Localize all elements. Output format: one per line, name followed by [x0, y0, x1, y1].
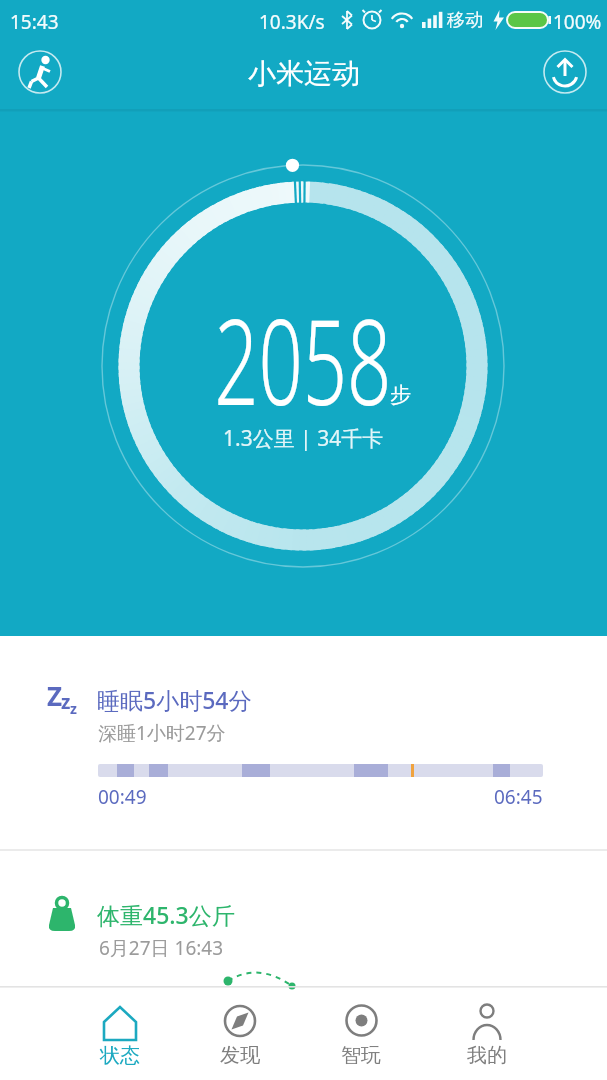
- button[interactable]: [543, 50, 587, 94]
- staticText: 100%: [553, 9, 602, 35]
- button[interactable]: [0, 852, 607, 987]
- button[interactable]: [302, 990, 422, 1080]
- button[interactable]: [60, 990, 180, 1080]
- staticText: z: [70, 699, 77, 718]
- staticText: 10.3K/s: [259, 9, 325, 35]
- staticText: z: [61, 689, 71, 715]
- staticText: 1.3公里 | 34千卡: [223, 424, 384, 453]
- staticText: Z: [47, 678, 63, 713]
- staticText: 小米运动: [248, 56, 360, 91]
- staticText: 我的: [467, 1043, 507, 1068]
- staticText: 体重45.3公斤: [97, 899, 235, 930]
- button[interactable]: [18, 50, 62, 94]
- staticText: 深睡1小时27分: [98, 720, 226, 746]
- staticText: 6月27日 16:43: [99, 935, 224, 961]
- button[interactable]: [0, 648, 607, 848]
- staticText: 15:43: [10, 9, 59, 35]
- button[interactable]: [427, 990, 547, 1080]
- staticText: 发现: [220, 1043, 260, 1068]
- staticText: 移动: [447, 9, 483, 32]
- staticText: 06:45: [494, 784, 543, 810]
- staticText: 智玩: [341, 1043, 381, 1068]
- staticText: 步: [390, 382, 411, 408]
- staticText: 睡眠5小时54分: [97, 684, 252, 715]
- staticText: 状态: [100, 1043, 140, 1068]
- button[interactable]: [180, 990, 300, 1080]
- staticText: 00:49: [98, 784, 147, 810]
- staticText: 2058: [214, 280, 392, 439]
